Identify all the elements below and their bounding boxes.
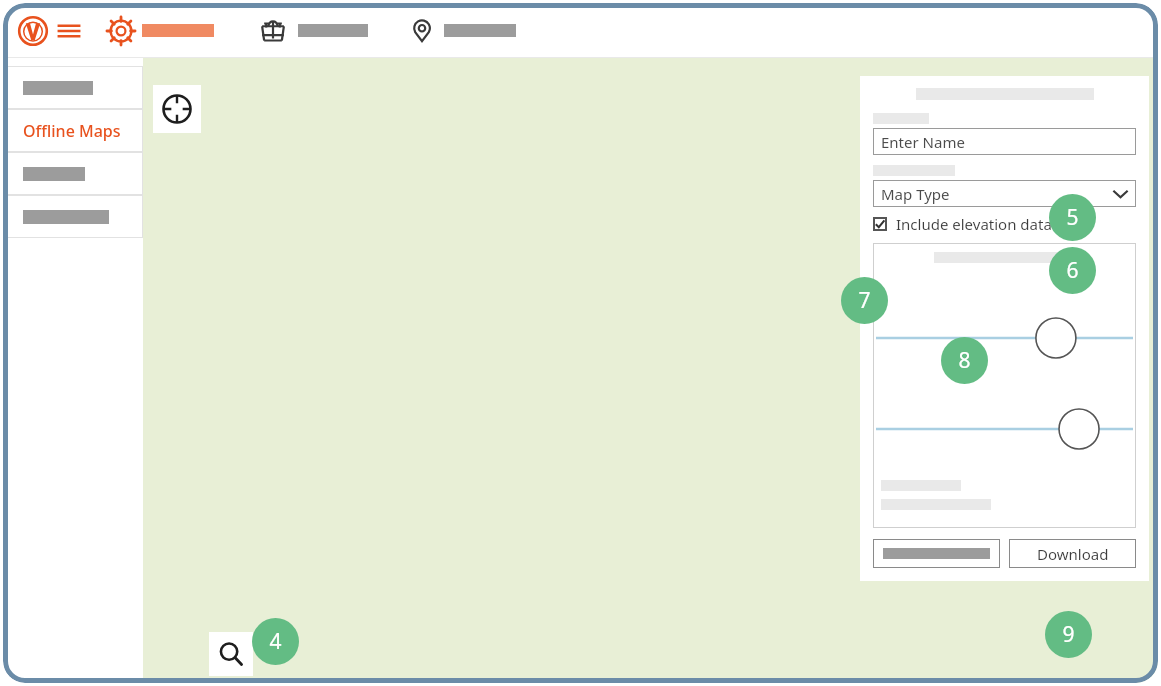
staticText: 5 [1066, 203, 1079, 232]
button[interactable] [5, 66, 143, 109]
button[interactable]: Home logo [18, 16, 48, 46]
button[interactable] [5, 152, 143, 195]
button[interactable]: Map Type [873, 180, 1136, 207]
button[interactable]: Menu [56, 18, 82, 44]
button[interactable]: Download [1009, 539, 1136, 568]
staticText: Enter Name [881, 132, 965, 152]
button[interactable]: Trails [256, 14, 290, 48]
staticText: 8 [958, 346, 971, 375]
staticText: Download [1037, 544, 1109, 564]
staticText: 7 [858, 286, 871, 315]
button[interactable]: Search [209, 632, 253, 676]
staticText: Include elevation data [896, 214, 1052, 234]
button[interactable] [5, 195, 143, 238]
button[interactable]: Location [408, 17, 436, 45]
button[interactable]: Offline Maps [5, 109, 143, 152]
button[interactable] [873, 539, 1000, 568]
button[interactable]: Center map [153, 85, 201, 133]
staticText: 6 [1066, 256, 1079, 285]
staticText: 9 [1062, 620, 1075, 649]
staticText: Map Type [881, 184, 950, 204]
staticText: Offline Maps [23, 120, 121, 142]
button[interactable]: Enter Name [873, 128, 1136, 155]
button[interactable]: Include elevation data [873, 214, 1136, 234]
staticText: 4 [269, 627, 282, 656]
button[interactable]: Settings [108, 18, 134, 44]
